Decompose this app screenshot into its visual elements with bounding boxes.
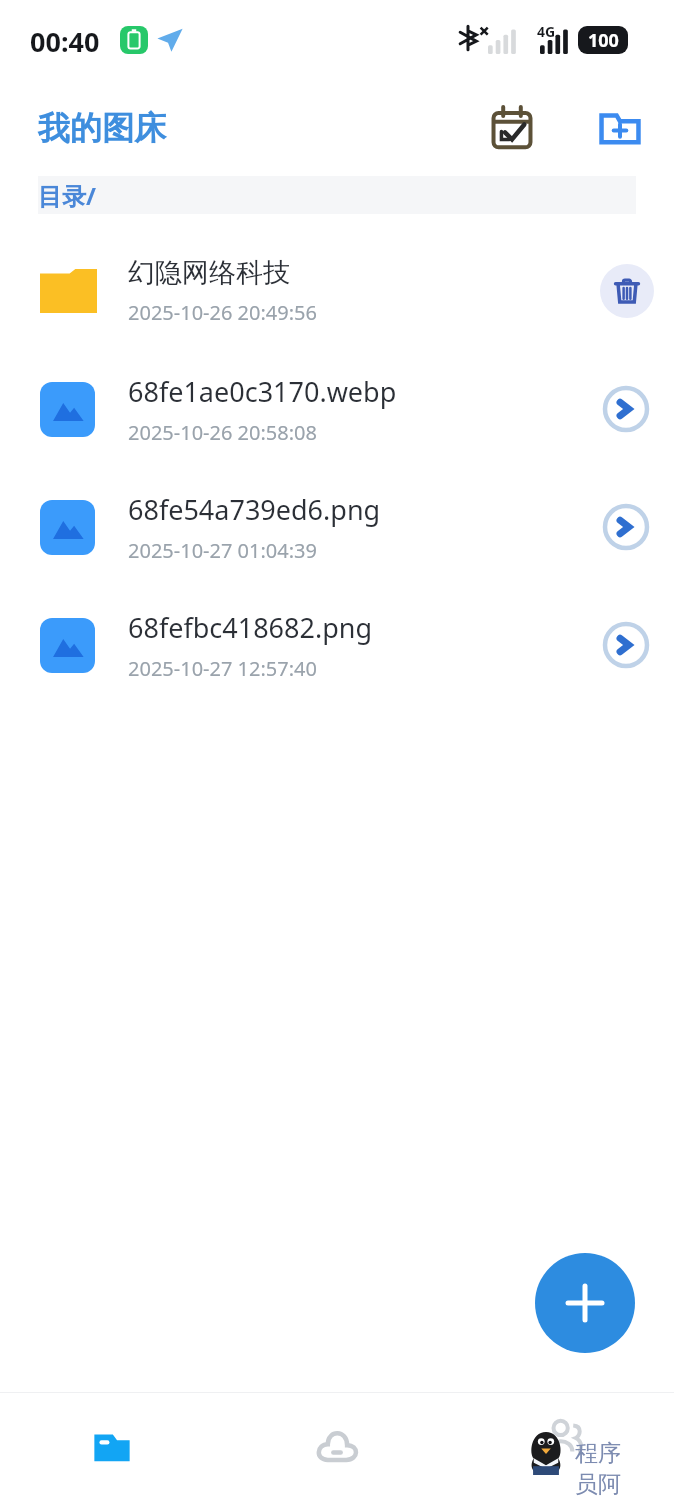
button[interactable]: Files bbox=[0, 1393, 224, 1500]
button[interactable]: Delete bbox=[600, 264, 654, 318]
staticText: 2025-10-27 01:04:39 bbox=[128, 537, 317, 564]
staticText: 2025-10-27 12:57:40 bbox=[128, 655, 317, 682]
staticText: 100 bbox=[588, 28, 619, 53]
staticText: 68fe1ae0c3170.webp bbox=[128, 373, 397, 410]
button[interactable]: Profile bbox=[449, 1393, 674, 1500]
staticText: 00:40 bbox=[30, 23, 100, 60]
button[interactable]: New folder bbox=[592, 100, 648, 156]
staticText: 68fe54a739ed6.png bbox=[128, 491, 381, 528]
button[interactable]: 幻隐网络科技 bbox=[0, 232, 674, 350]
button[interactable]: 68fe54a739ed6.png bbox=[0, 468, 674, 586]
button[interactable]: Add bbox=[535, 1253, 635, 1353]
button[interactable]: Cloud bbox=[224, 1393, 449, 1500]
button[interactable]: Open bbox=[600, 619, 652, 671]
staticText: 我的图床 bbox=[38, 108, 166, 148]
staticText: 目录/ bbox=[38, 179, 96, 212]
staticText: 2025-10-26 20:58:08 bbox=[128, 419, 317, 446]
button[interactable]: 68fefbc418682.png bbox=[0, 586, 674, 704]
button[interactable]: 68fe1ae0c3170.webp bbox=[0, 350, 674, 468]
staticText: 程序员阿鑫 bbox=[575, 1439, 641, 1499]
staticText: 幻隐网络科技 bbox=[128, 256, 290, 290]
button[interactable]: Open bbox=[600, 501, 652, 553]
staticText: 2025-10-26 20:49:56 bbox=[128, 299, 317, 326]
button[interactable]: Open bbox=[600, 383, 652, 435]
staticText: 4G bbox=[537, 22, 556, 41]
staticText: 68fefbc418682.png bbox=[128, 609, 373, 646]
button[interactable]: Calendar bbox=[484, 100, 540, 156]
